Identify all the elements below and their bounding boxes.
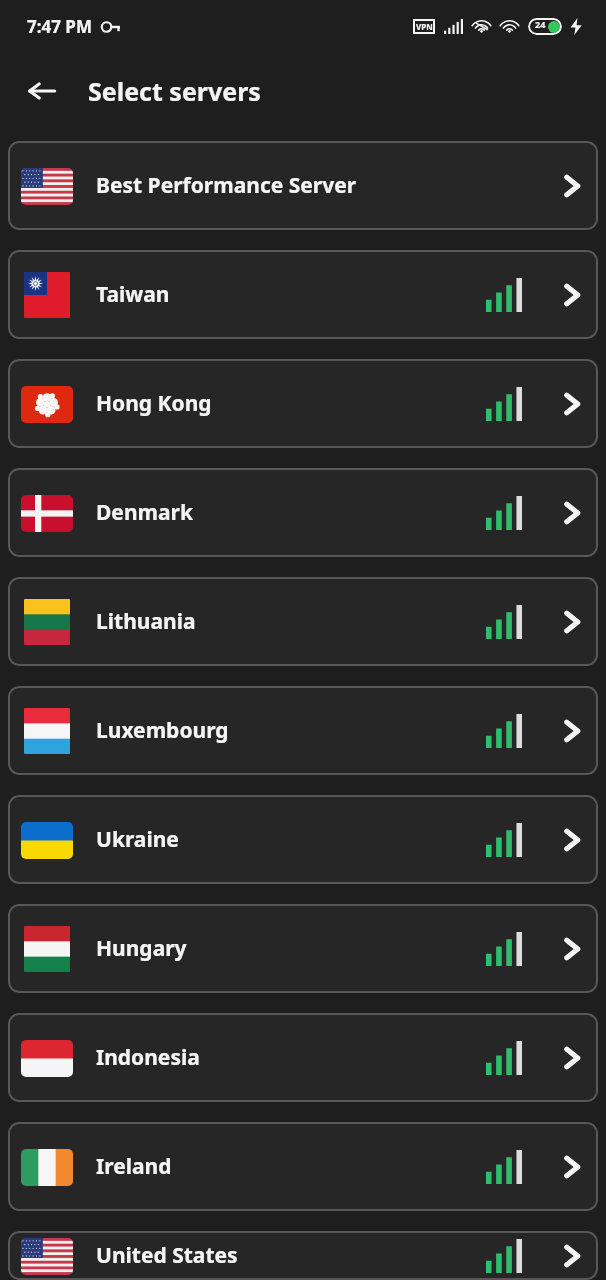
button[interactable]: Indonesia: [8, 1013, 598, 1102]
staticText: Select servers: [88, 74, 261, 108]
other: Open Luxembourg: [546, 686, 598, 775]
other: Open Denmark: [546, 468, 598, 557]
other: Open Lithuania: [546, 577, 598, 666]
staticText: Ukraine: [96, 825, 179, 854]
staticText: Ireland: [96, 1152, 172, 1181]
other: Open United States: [546, 1231, 598, 1280]
button[interactable]: Ukraine: [8, 795, 598, 884]
button[interactable]: Back: [14, 63, 70, 119]
staticText: Denmark: [96, 498, 194, 527]
staticText: Luxembourg: [96, 716, 229, 745]
staticText: 24: [535, 18, 546, 30]
staticText: 7:47 PM: [27, 15, 92, 38]
other: Open Ukraine: [546, 795, 598, 884]
button[interactable]: Taiwan: [8, 250, 598, 339]
other: Open Taiwan: [546, 250, 598, 339]
staticText: VPN: [416, 21, 433, 32]
button[interactable]: Ireland: [8, 1122, 598, 1211]
staticText: Indonesia: [96, 1043, 200, 1072]
other: Open Hong Kong: [546, 359, 598, 448]
staticText: Lithuania: [96, 607, 196, 636]
button[interactable]: Denmark: [8, 468, 598, 557]
staticText: Hong Kong: [96, 389, 212, 418]
other: Open Indonesia: [546, 1013, 598, 1102]
other: Open Ireland: [546, 1122, 598, 1211]
other: Open Hungary: [546, 904, 598, 993]
button[interactable]: Best Performance Server: [8, 141, 598, 230]
staticText: United States: [96, 1241, 238, 1270]
button[interactable]: United States: [8, 1231, 598, 1280]
button[interactable]: Luxembourg: [8, 686, 598, 775]
staticText: Taiwan: [96, 280, 170, 309]
staticText: Hungary: [96, 934, 187, 963]
staticText: Best Performance Server: [96, 171, 357, 200]
button[interactable]: Hong Kong: [8, 359, 598, 448]
button[interactable]: Lithuania: [8, 577, 598, 666]
button[interactable]: Hungary: [8, 904, 598, 993]
other: Open Best Performance Server: [546, 141, 598, 230]
